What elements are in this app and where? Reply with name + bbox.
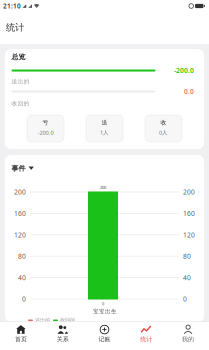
staticText: 120 xyxy=(183,230,195,239)
staticText: 0人 xyxy=(159,129,168,136)
staticText: 21:10 xyxy=(3,2,21,10)
button[interactable]: 首页 xyxy=(0,325,42,343)
staticText: 关系 xyxy=(57,335,69,343)
staticText: 40 xyxy=(183,273,191,282)
staticText: 收 xyxy=(160,119,166,126)
staticText: 亏 xyxy=(42,119,48,126)
staticText: 0 xyxy=(183,294,187,304)
button[interactable]: 关系 xyxy=(42,325,84,343)
staticText: 首页 xyxy=(15,335,27,343)
staticText: 宝宝出生 xyxy=(93,308,117,315)
staticText: 收回的 xyxy=(60,317,75,324)
button[interactable]: 收 xyxy=(145,115,182,142)
staticText: 送 xyxy=(101,119,107,126)
staticText: 200 xyxy=(14,187,26,197)
staticText: 0 xyxy=(22,294,26,304)
button[interactable]: 记账 xyxy=(84,325,125,343)
staticText: 200 xyxy=(183,187,195,197)
staticText: 记账 xyxy=(98,335,110,343)
staticText: 收回的 xyxy=(11,100,29,107)
button[interactable]: 事件 xyxy=(11,163,33,174)
staticText: 事件 xyxy=(11,164,25,173)
staticText: 统计 xyxy=(6,22,24,33)
staticText: 0.0 xyxy=(184,87,194,96)
staticText: 80 xyxy=(183,252,191,261)
staticText: 0 xyxy=(102,301,104,306)
staticText: 120 xyxy=(14,230,26,239)
staticText: -200.0 xyxy=(37,129,53,136)
staticText: 送出的 xyxy=(11,78,29,85)
staticText: 总览 xyxy=(11,53,25,61)
button[interactable]: 统计 xyxy=(0,22,209,36)
button[interactable]: 送 xyxy=(86,115,123,142)
staticText: 80 xyxy=(18,252,26,261)
staticText: 统计 xyxy=(140,335,152,343)
staticText: 40 xyxy=(18,273,26,282)
staticText: 200 xyxy=(100,185,106,190)
button[interactable]: 亏 xyxy=(27,115,64,142)
staticText: 160 xyxy=(14,209,26,218)
staticText: 我的 xyxy=(182,335,194,343)
staticText: 1人 xyxy=(100,129,109,136)
button[interactable]: 我的 xyxy=(167,325,209,343)
staticText: -200.0 xyxy=(174,66,194,75)
button[interactable]: 统计 xyxy=(125,325,167,343)
staticText: 送出的 xyxy=(35,317,50,324)
staticText: 160 xyxy=(183,209,195,218)
